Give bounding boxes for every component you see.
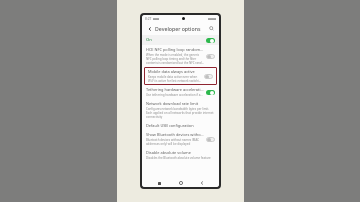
button[interactable]: Network download rate limit [142,99,219,121]
button[interactable]: Toggle off [204,74,213,79]
button[interactable]: Back [145,24,154,33]
staticText: Bluetooth devices without names (MAC add… [146,138,204,146]
button[interactable]: Toggle off [206,137,215,142]
staticText: Tethering hardware acceleration [146,87,204,92]
button[interactable]: Show Bluetooth devices without names [142,130,219,148]
staticText: Show Bluetooth devices without names [146,132,204,137]
staticText: Default USB configuration [146,123,194,128]
staticText: On [146,37,152,43]
button[interactable]: HCE NFC polling loop randomization [142,45,219,67]
button[interactable]: Default USB configuration [142,121,219,130]
staticText: Keeps mobile data active even when Wi-Fi… [148,75,202,83]
button[interactable]: Mobile data always active [144,67,217,85]
button[interactable]: Tethering hardware acceleration [142,85,219,99]
staticText: Disable absolute volume [146,150,191,155]
button[interactable]: Toggle on [206,90,215,95]
staticText: HCE NFC polling loop randomization [146,47,204,52]
staticText: Developer options [155,25,201,32]
staticText: Disables the Bluetooth absolute volume f… [146,156,211,160]
staticText: Configures network bandwidth bytes per l… [146,107,215,119]
staticText: When the mode is enabled, the generic NF… [146,53,204,65]
staticText: 8:27 [145,17,152,21]
button[interactable]: Back [198,179,206,187]
button[interactable]: Toggle off [206,54,215,59]
staticText: Mobile data always active [148,69,195,74]
button[interactable]: Recents [155,179,163,187]
button[interactable]: Search [207,24,216,33]
staticText: Network download rate limit [146,101,199,106]
button[interactable]: Toggle on [206,38,215,43]
button[interactable]: Home [177,179,185,187]
button[interactable]: On [142,35,219,45]
staticText: Use tethering hardware acceleration if a… [146,93,204,97]
button[interactable]: Disable absolute volume [142,148,219,162]
